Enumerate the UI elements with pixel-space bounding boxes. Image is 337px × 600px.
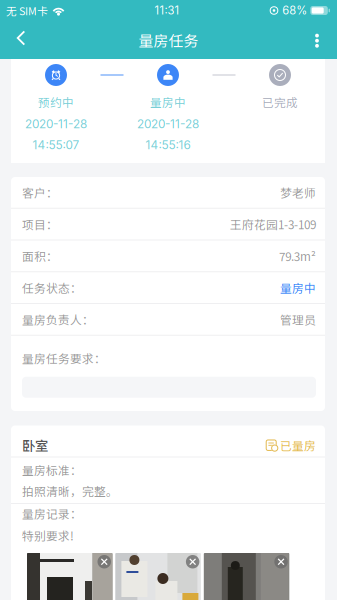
- staticText: 68%: [282, 4, 307, 17]
- staticText: 管理员: [280, 311, 316, 328]
- button[interactable]: 客户：: [11, 177, 325, 208]
- button[interactable]: Photo: [27, 553, 112, 600]
- staticText: 量房负责人：: [22, 311, 94, 328]
- staticText: 已量房: [280, 437, 316, 454]
- button[interactable]: Photo: [204, 553, 289, 600]
- button[interactable]: 面积：: [11, 240, 325, 271]
- button[interactable]: 任务状态：: [11, 272, 325, 303]
- staticText: 拍照清晰，完整。: [22, 482, 118, 499]
- staticText: 王府花园1-3-109: [230, 216, 316, 233]
- button[interactable]: 量房负责人：: [11, 304, 325, 335]
- staticText: 2020-11-28: [137, 117, 199, 131]
- staticText: 量房任务: [138, 29, 198, 51]
- staticText: 2020-11-28: [25, 117, 87, 131]
- staticText: 11:31: [155, 4, 180, 17]
- staticText: 任务状态：: [22, 279, 82, 296]
- staticText: 量房中: [280, 279, 316, 296]
- staticText: 量房中: [150, 94, 186, 110]
- button[interactable]: 删除照片: [186, 555, 199, 568]
- button[interactable]: 更多: [301, 18, 333, 59]
- staticText: 梦老师: [280, 184, 316, 201]
- button[interactable]: 返回: [2, 18, 38, 59]
- button[interactable]: 删除照片: [274, 555, 288, 568]
- button[interactable]: 项目：: [11, 209, 325, 240]
- staticText: 特别要求!: [22, 527, 74, 544]
- staticText: 项目：: [22, 216, 58, 233]
- staticText: 面积：: [22, 247, 58, 264]
- staticText: 无 SIM卡: [6, 3, 48, 18]
- staticText: 客户：: [22, 184, 58, 201]
- button[interactable]: 删除照片: [97, 555, 111, 568]
- staticText: 14:55:16: [145, 138, 190, 152]
- staticText: 79.3m²: [279, 247, 316, 264]
- staticText: 14:55:07: [32, 138, 79, 152]
- staticText: 量房任务要求：: [22, 350, 106, 367]
- staticText: 卧室: [22, 435, 48, 455]
- staticText: 已完成: [262, 94, 298, 110]
- button[interactable]: 已量房: [265, 437, 316, 454]
- button[interactable]: Photo: [115, 553, 201, 600]
- staticText: 量房标准：: [22, 461, 82, 478]
- staticText: 量房记录：: [22, 505, 82, 522]
- staticText: 预约中: [38, 94, 74, 110]
